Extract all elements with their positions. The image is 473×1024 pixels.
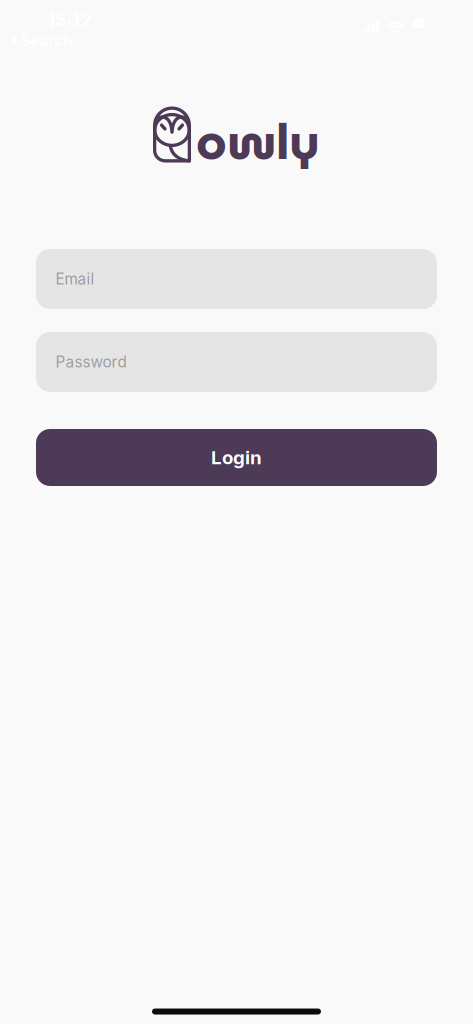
staticText: Email — [55, 270, 94, 288]
staticText: Password — [55, 353, 126, 371]
button[interactable]: Login — [36, 429, 437, 486]
staticText: Login — [211, 446, 262, 469]
button[interactable]: Email — [36, 249, 437, 309]
button[interactable]: Password — [36, 332, 437, 392]
staticText: owly — [196, 102, 320, 181]
